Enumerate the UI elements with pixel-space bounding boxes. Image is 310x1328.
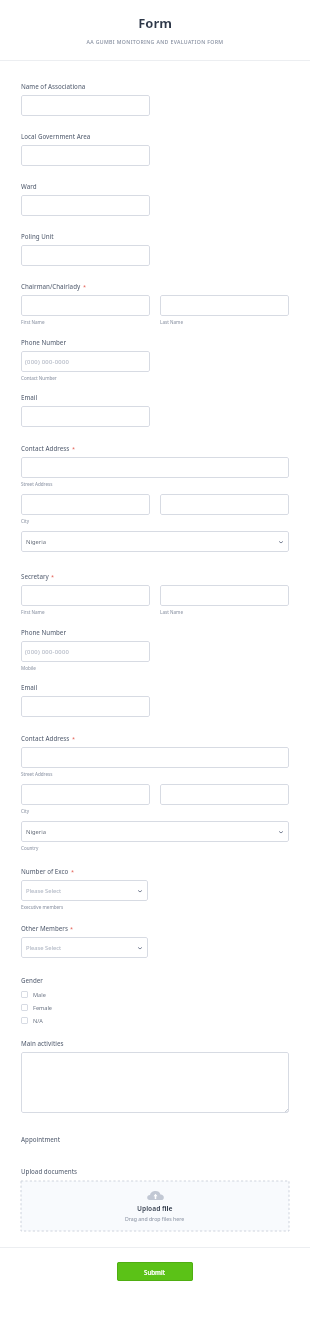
staticText: Phone Number <box>21 628 67 636</box>
staticText: Poling Unit <box>21 232 54 240</box>
button[interactable] <box>160 295 289 316</box>
button[interactable] <box>160 494 289 515</box>
staticText: N/A <box>33 1017 43 1025</box>
staticText: Other Members <box>21 924 68 932</box>
button[interactable] <box>21 784 150 805</box>
staticText: Ward <box>21 182 37 190</box>
button[interactable] <box>21 295 150 316</box>
staticText: (000) 000-0000 <box>25 358 70 366</box>
button[interactable]: Submit <box>117 1262 193 1281</box>
staticText: Drag and drop files here <box>125 1215 185 1222</box>
staticText: Local Government Area <box>21 132 91 140</box>
staticText: Contact Address <box>21 734 70 742</box>
staticText: City <box>21 808 30 814</box>
button[interactable] <box>21 457 289 478</box>
button[interactable]: (000) 000-0000 <box>21 641 150 662</box>
button[interactable]: Male <box>21 988 289 1001</box>
staticText: Secretary <box>21 572 49 580</box>
staticText: * <box>72 735 76 742</box>
staticText: First Name <box>21 609 45 615</box>
staticText: * <box>70 925 74 932</box>
staticText: Name of Associationa <box>21 82 86 90</box>
button[interactable] <box>21 195 150 216</box>
staticText: * <box>71 868 75 875</box>
staticText: Contact Address <box>21 444 70 452</box>
staticText: Gender <box>21 976 43 984</box>
button[interactable]: (000) 000-0000 <box>21 351 150 372</box>
staticText: Male <box>33 991 46 999</box>
button[interactable] <box>160 585 289 606</box>
button[interactable]: N/A <box>21 1014 289 1027</box>
button[interactable]: Female <box>21 1001 289 1014</box>
staticText: Email <box>21 683 38 691</box>
button[interactable] <box>21 245 150 266</box>
staticText: (000) 000-0000 <box>25 648 70 656</box>
staticText: Executive members <box>21 904 64 910</box>
staticText: * <box>72 445 76 452</box>
staticText: Nigeria <box>26 538 46 546</box>
staticText: Appointment <box>21 1135 61 1143</box>
staticText: City <box>21 518 30 524</box>
staticText: Female <box>33 1004 53 1012</box>
button[interactable] <box>21 1052 289 1113</box>
button[interactable] <box>21 494 150 515</box>
staticText: Last Name <box>160 319 183 325</box>
staticText: Street Address <box>21 771 53 777</box>
staticText: Street Address <box>21 481 53 487</box>
staticText: Upload documents <box>21 1167 78 1175</box>
button[interactable]: Nigeria <box>21 531 289 552</box>
staticText: Number of Exco <box>21 867 69 875</box>
staticText: Phone Number <box>21 338 67 346</box>
staticText: First Name <box>21 319 45 325</box>
staticText: Country <box>21 845 39 851</box>
staticText: * <box>51 573 55 580</box>
staticText: Contact Number <box>21 375 57 381</box>
staticText: Please Select <box>26 944 62 952</box>
staticText: Nigeria <box>26 828 46 836</box>
staticText: AA GUMBI MONITORING AND EVALUATION FORM <box>0 38 310 45</box>
button[interactable]: Please Select <box>21 937 148 958</box>
button[interactable]: Upload file <box>21 1181 289 1231</box>
staticText: Email <box>21 393 38 401</box>
button[interactable] <box>21 95 150 116</box>
button[interactable] <box>21 747 289 768</box>
staticText: Submit <box>144 1268 166 1276</box>
button[interactable] <box>21 145 150 166</box>
button[interactable] <box>160 784 289 805</box>
staticText: Please Select <box>26 887 62 895</box>
staticText: Upload file <box>137 1204 173 1213</box>
staticText: Last Name <box>160 609 183 615</box>
button[interactable]: Please Select <box>21 880 148 901</box>
button[interactable]: Nigeria <box>21 821 289 842</box>
button[interactable] <box>21 406 150 427</box>
staticText: Main activities <box>21 1039 64 1047</box>
staticText: Chairman/Chairlady <box>21 282 81 290</box>
button[interactable] <box>21 696 150 717</box>
staticText: Form <box>0 14 310 32</box>
staticText: Mobile <box>21 665 36 671</box>
button[interactable] <box>21 585 150 606</box>
staticText: * <box>83 283 87 290</box>
